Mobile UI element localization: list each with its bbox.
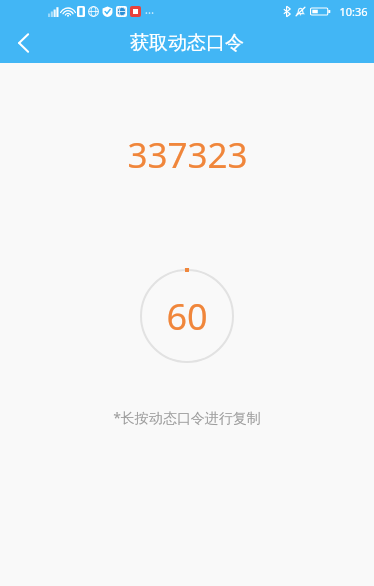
staticText: 获取动态口令	[130, 31, 244, 55]
button[interactable]: 337323	[127, 131, 248, 179]
staticText: 10:36	[339, 4, 368, 19]
staticText: *长按动态口令进行复制	[113, 408, 261, 427]
staticText: 60	[166, 292, 208, 341]
button[interactable]: Back	[0, 22, 46, 63]
